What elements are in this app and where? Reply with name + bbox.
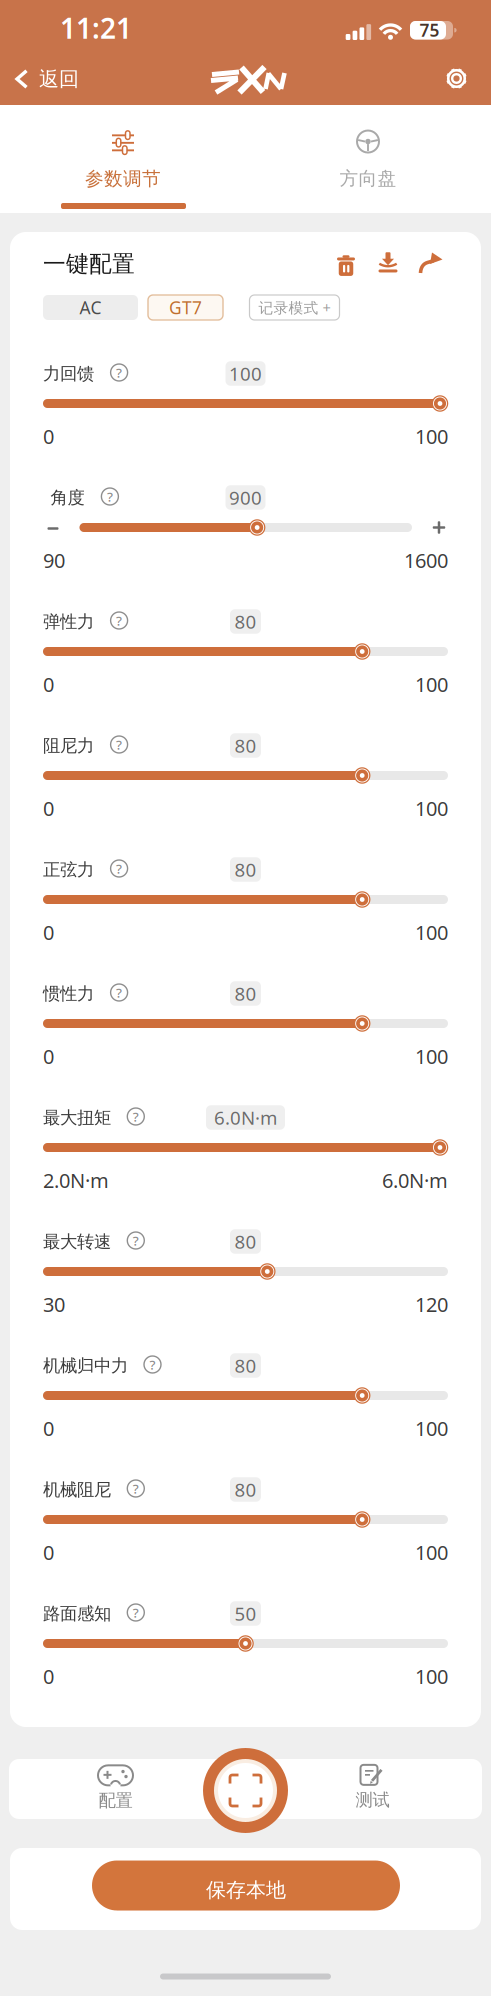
staticText: 测试 bbox=[355, 1789, 389, 1811]
staticText: 80 bbox=[234, 857, 256, 882]
staticText: 记录模式 + bbox=[258, 298, 330, 317]
staticText: 100 bbox=[415, 795, 448, 822]
button[interactable]: 校准 bbox=[203, 1748, 288, 1833]
button[interactable]: 方向盘 bbox=[339, 130, 396, 190]
staticText: 弹性力 bbox=[43, 611, 94, 632]
staticText: 6.0N·m bbox=[382, 1167, 448, 1194]
staticText: 最大扭矩 bbox=[43, 1107, 111, 1128]
staticText: ? bbox=[116, 364, 122, 381]
staticText: 80 bbox=[234, 1477, 256, 1502]
staticText: GT7 bbox=[169, 296, 202, 319]
staticText: 2.0N·m bbox=[43, 1167, 109, 1194]
button[interactable]: 返回 bbox=[15, 67, 79, 91]
staticText: ? bbox=[133, 1480, 139, 1497]
staticText: 100 bbox=[415, 1043, 448, 1070]
button[interactable]: 帮助 bbox=[101, 487, 119, 505]
staticText: 80 bbox=[234, 609, 256, 634]
staticText: 机械阻尼 bbox=[43, 1479, 111, 1500]
button[interactable]: 帮助 bbox=[127, 1231, 145, 1249]
staticText: 0 bbox=[43, 1043, 54, 1070]
button[interactable]: 分享 bbox=[418, 252, 441, 273]
button[interactable]: GT7 bbox=[148, 295, 223, 320]
staticText: 配置 bbox=[98, 1790, 132, 1811]
staticText: ? bbox=[133, 1108, 139, 1125]
staticText: 机械归中力 bbox=[43, 1355, 128, 1376]
button[interactable]: 帮助 bbox=[143, 1355, 161, 1373]
staticText: 30 bbox=[43, 1291, 65, 1318]
staticText: 80 bbox=[234, 981, 256, 1006]
staticText: 0 bbox=[43, 1663, 54, 1690]
staticText: ? bbox=[116, 736, 122, 753]
button[interactable]: 删除 bbox=[337, 252, 355, 273]
button[interactable]: 帮助 bbox=[110, 363, 128, 381]
button[interactable]: 增大 bbox=[433, 521, 445, 534]
staticText: ? bbox=[116, 984, 122, 1001]
staticText: 100 bbox=[229, 361, 262, 386]
staticText: 方向盘 bbox=[339, 167, 396, 190]
staticText: ? bbox=[116, 612, 122, 629]
staticText: 角度 bbox=[50, 487, 84, 508]
staticText: 路面感知 bbox=[43, 1603, 111, 1624]
staticText: 惯性力 bbox=[43, 983, 94, 1004]
button[interactable]: 减小 bbox=[47, 527, 58, 530]
staticText: 100 bbox=[415, 1415, 448, 1442]
staticText: ? bbox=[133, 1232, 139, 1249]
button[interactable]: 帮助 bbox=[110, 983, 128, 1001]
staticText: 力回馈 bbox=[43, 363, 94, 384]
button[interactable]: 下载 bbox=[378, 252, 397, 273]
staticText: 参数调节 bbox=[85, 167, 161, 190]
button[interactable]: 测试 bbox=[355, 1763, 389, 1811]
staticText: 保存本地 bbox=[206, 1878, 286, 1902]
staticText: 100 bbox=[415, 423, 448, 450]
staticText: ? bbox=[116, 860, 122, 877]
staticText: AC bbox=[79, 296, 101, 319]
staticText: 返回 bbox=[39, 67, 79, 91]
staticText: 900 bbox=[229, 485, 262, 510]
button[interactable]: 设置 bbox=[445, 67, 467, 89]
staticText: 75 bbox=[419, 18, 439, 41]
staticText: 100 bbox=[415, 1539, 448, 1566]
staticText: 最大转速 bbox=[43, 1231, 111, 1252]
button[interactable]: 配置 bbox=[98, 1765, 133, 1811]
staticText: ? bbox=[149, 1356, 155, 1373]
staticText: 正弦力 bbox=[43, 859, 94, 880]
staticText: 80 bbox=[234, 1353, 256, 1378]
staticText: 阻尼力 bbox=[43, 735, 94, 756]
staticText: ? bbox=[107, 488, 113, 505]
staticText: 100 bbox=[415, 1663, 448, 1690]
button[interactable]: 保存本地 bbox=[92, 1860, 400, 1910]
staticText: 0 bbox=[43, 1539, 54, 1566]
staticText: 0 bbox=[43, 671, 54, 698]
staticText: 11:21 bbox=[60, 9, 132, 47]
button[interactable]: 帮助 bbox=[110, 735, 128, 753]
staticText: 一键配置 bbox=[43, 250, 135, 278]
button[interactable]: 帮助 bbox=[110, 611, 128, 629]
staticText: 100 bbox=[415, 919, 448, 946]
staticText: 80 bbox=[234, 733, 256, 758]
staticText: 0 bbox=[43, 795, 54, 822]
staticText: 120 bbox=[415, 1291, 448, 1318]
button[interactable]: 记录模式 + bbox=[249, 295, 339, 320]
button[interactable]: 参数调节 bbox=[85, 135, 161, 190]
button[interactable]: 帮助 bbox=[110, 859, 128, 877]
staticText: 80 bbox=[234, 1229, 256, 1254]
button[interactable]: 帮助 bbox=[127, 1603, 145, 1621]
staticText: 6.0N·m bbox=[214, 1105, 277, 1130]
button[interactable]: AC bbox=[43, 295, 138, 320]
staticText: ? bbox=[133, 1604, 139, 1621]
staticText: 0 bbox=[43, 423, 54, 450]
staticText: 50 bbox=[234, 1601, 256, 1626]
staticText: 0 bbox=[43, 919, 54, 946]
button[interactable]: 帮助 bbox=[127, 1107, 145, 1125]
staticText: 1600 bbox=[404, 547, 448, 574]
staticText: 0 bbox=[43, 1415, 54, 1442]
staticText: 100 bbox=[415, 671, 448, 698]
staticText: 90 bbox=[43, 547, 65, 574]
button[interactable]: 帮助 bbox=[127, 1479, 145, 1497]
